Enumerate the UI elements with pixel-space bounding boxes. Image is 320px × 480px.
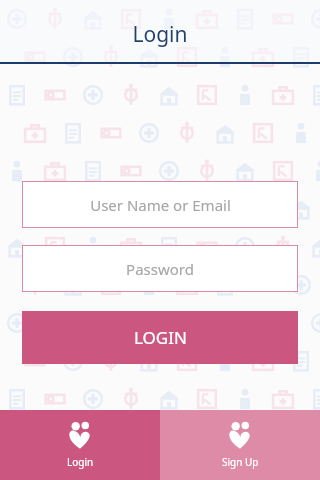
button[interactable]: Sign Up bbox=[160, 410, 320, 480]
button[interactable]: Login bbox=[0, 410, 160, 480]
staticText: Password bbox=[126, 259, 194, 279]
button[interactable]: User Name or Email bbox=[22, 181, 298, 228]
staticText: User Name or Email bbox=[90, 195, 231, 215]
staticText: Sign Up bbox=[222, 455, 259, 469]
staticText: LOGIN bbox=[134, 326, 187, 349]
staticText: Login bbox=[67, 455, 94, 469]
staticText: Login bbox=[132, 20, 188, 49]
button[interactable]: Password bbox=[22, 245, 298, 292]
button[interactable]: LOGIN bbox=[22, 311, 298, 364]
